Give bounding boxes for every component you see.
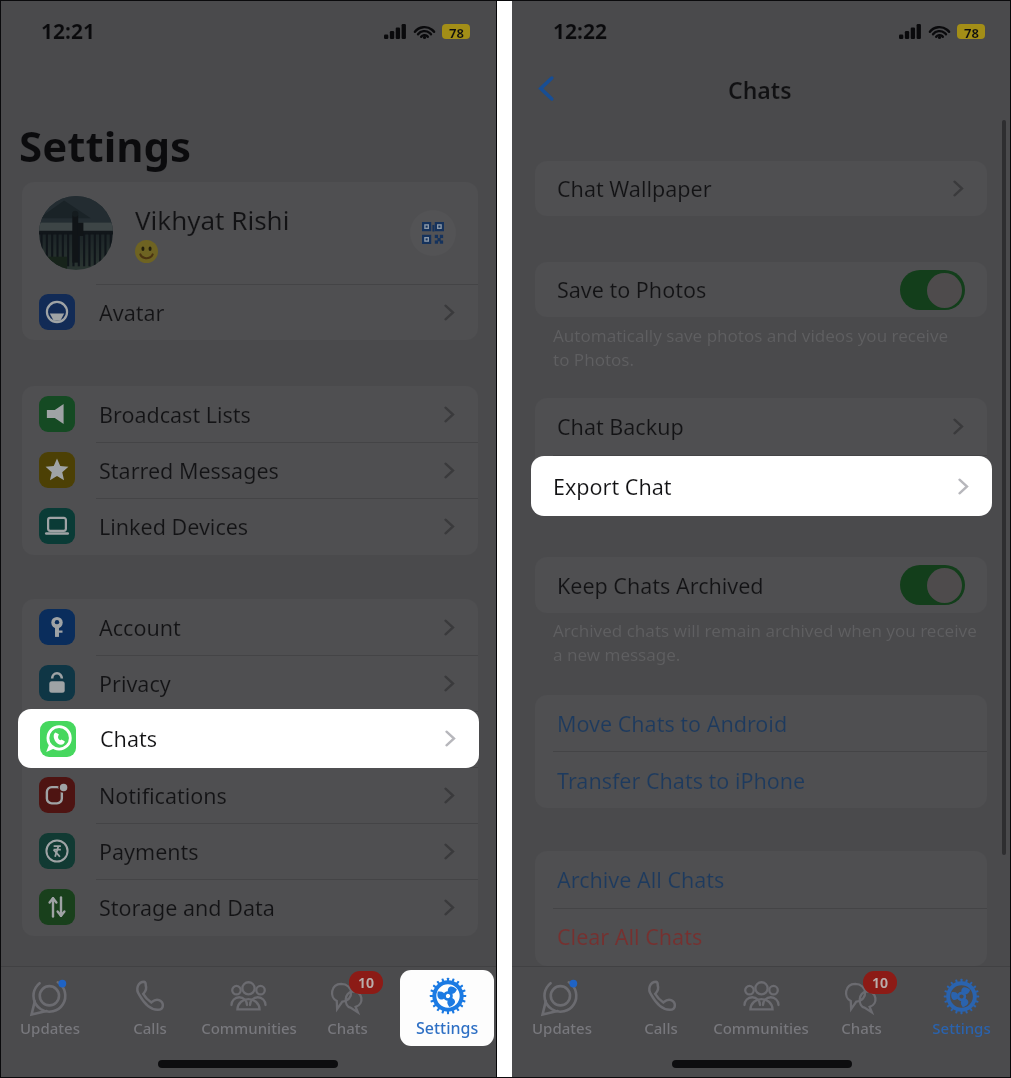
staticText: Chat Backup xyxy=(557,412,684,441)
staticText: 78 xyxy=(964,24,979,39)
button[interactable]: Save to Photos xyxy=(535,262,987,317)
staticText: Communities xyxy=(201,1018,297,1038)
staticText: Avatar xyxy=(99,298,165,327)
button[interactable]: Avatar xyxy=(22,284,478,340)
button[interactable]: Chat Wallpaper xyxy=(535,161,987,216)
staticText: Account xyxy=(99,613,181,642)
staticText: Broadcast Lists xyxy=(99,400,251,429)
staticText: Communities xyxy=(713,1018,809,1038)
button[interactable]: Broadcast Lists xyxy=(22,386,478,442)
button[interactable]: Archive All Chats xyxy=(535,851,987,908)
button[interactable]: My QR code xyxy=(410,210,456,256)
button[interactable]: Notifications xyxy=(22,767,478,823)
button[interactable]: Settings xyxy=(911,978,1011,1062)
staticText: Privacy xyxy=(99,669,171,698)
staticText: Archive All Chats xyxy=(557,865,725,894)
staticText: Payments xyxy=(99,837,199,866)
button[interactable]: Settings xyxy=(397,978,496,1062)
staticText: Transfer Chats to iPhone xyxy=(557,766,806,795)
button[interactable]: Updates xyxy=(0,978,100,1062)
button[interactable]: Communities xyxy=(199,978,298,1062)
button[interactable]: Chat Backup xyxy=(535,398,987,455)
button[interactable]: Export Chat xyxy=(531,456,992,516)
button[interactable]: Privacy xyxy=(22,655,478,711)
staticText: 12:22 xyxy=(553,17,607,46)
button[interactable]: 10 xyxy=(811,978,911,1062)
staticText: Keep Chats Archived xyxy=(557,571,764,600)
button[interactable]: Calls xyxy=(100,978,199,1062)
button[interactable]: Chats xyxy=(18,709,479,768)
staticText: Save to Photos xyxy=(557,275,707,304)
button[interactable]: Communities xyxy=(711,978,811,1062)
button[interactable]: 10 xyxy=(298,978,397,1062)
staticText: Clear All Chats xyxy=(557,922,703,951)
staticText: Settings xyxy=(417,1018,476,1038)
staticText: Export Chat xyxy=(553,472,672,501)
staticText: Move Chats to Android xyxy=(557,709,788,738)
staticText: Chats xyxy=(327,1018,368,1038)
staticText: Storage and Data xyxy=(99,893,275,922)
staticText: Chats xyxy=(100,724,157,753)
button[interactable]: Move Chats to Android xyxy=(535,695,987,751)
staticText: Calls xyxy=(644,1018,678,1038)
staticText: Archived chats will remain archived when… xyxy=(553,619,977,666)
staticText: Vikhyat Rishi xyxy=(135,202,290,237)
button[interactable]: Updates xyxy=(512,978,611,1062)
button[interactable]: Calls xyxy=(611,978,711,1062)
staticText: Updates xyxy=(20,1018,80,1038)
button[interactable]: Settings xyxy=(400,970,494,1046)
staticText: Chats xyxy=(841,1018,882,1038)
button[interactable]: Clear All Chats xyxy=(535,908,987,965)
staticText: Settings xyxy=(19,117,192,174)
button[interactable]: Vikhyat Rishi xyxy=(22,182,478,283)
button[interactable]: Linked Devices xyxy=(22,498,478,554)
button[interactable]: Back xyxy=(526,68,566,108)
staticText: Settings xyxy=(416,1017,479,1039)
button[interactable]: Starred Messages xyxy=(22,442,478,498)
staticText: 78 xyxy=(449,24,464,39)
button[interactable]: Storage and Data xyxy=(22,879,478,935)
staticText: Starred Messages xyxy=(99,456,279,485)
staticText: 10 xyxy=(358,973,375,992)
button[interactable]: Account xyxy=(22,599,478,655)
staticText: Chat Wallpaper xyxy=(557,174,712,203)
staticText: Automatically save photos and videos you… xyxy=(553,324,949,371)
staticText: Updates xyxy=(532,1018,592,1038)
staticText: Settings xyxy=(932,1018,991,1038)
button[interactable]: Payments xyxy=(22,823,478,879)
button[interactable]: Keep Chats Archived xyxy=(535,557,987,613)
staticText: Calls xyxy=(133,1018,167,1038)
staticText: Linked Devices xyxy=(99,512,249,541)
staticText: Chats xyxy=(728,74,792,105)
button[interactable]: Transfer Chats to iPhone xyxy=(535,752,987,808)
staticText: Notifications xyxy=(99,781,227,810)
staticText: 12:21 xyxy=(41,17,95,46)
staticText: 10 xyxy=(872,973,889,992)
